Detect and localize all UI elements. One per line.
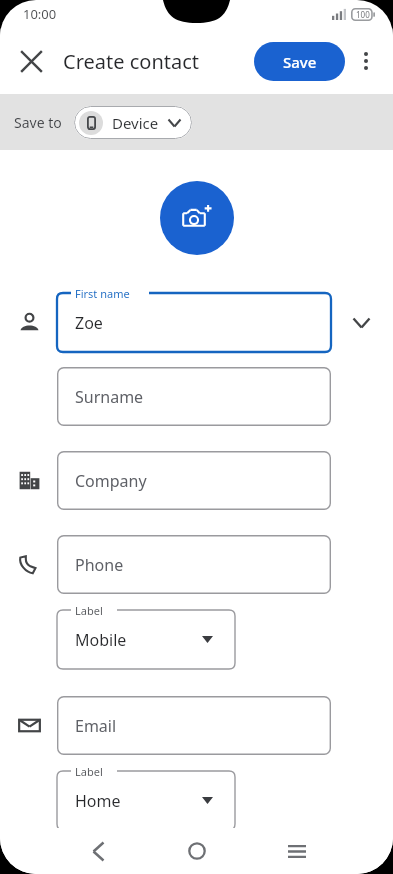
- button[interactable]: Add photo: [160, 181, 234, 255]
- button[interactable]: Company: [57, 451, 331, 510]
- button[interactable]: Expand name fields: [341, 303, 381, 343]
- button[interactable]: Label: [57, 610, 235, 669]
- staticText: Save: [283, 52, 317, 72]
- staticText: 10:00: [23, 5, 57, 23]
- staticText: Label: [75, 764, 103, 779]
- staticText: More fields: [62, 854, 143, 874]
- staticText: Mobile: [75, 629, 127, 651]
- button[interactable]: Back: [78, 831, 118, 871]
- staticText: 100: [356, 9, 370, 20]
- button[interactable]: Recent apps: [277, 831, 317, 871]
- button[interactable]: Email: [57, 696, 331, 755]
- staticText: Save to: [14, 113, 62, 132]
- staticText: Zoe: [75, 312, 103, 334]
- staticText: Create contact: [63, 48, 200, 75]
- staticText: Device: [112, 113, 159, 133]
- button[interactable]: Home: [177, 831, 217, 871]
- staticText: Phone: [75, 554, 124, 576]
- button[interactable]: Device: [74, 106, 192, 139]
- staticText: Surname: [75, 386, 144, 408]
- button[interactable]: Save: [254, 42, 345, 81]
- staticText: First name: [75, 286, 130, 301]
- staticText: Email: [75, 715, 117, 737]
- button[interactable]: Close: [11, 41, 51, 81]
- button[interactable]: More options: [346, 41, 386, 81]
- button[interactable]: First name: [57, 293, 331, 352]
- staticText: Home: [75, 790, 121, 812]
- button[interactable]: Label: [57, 771, 235, 830]
- button[interactable]: Phone: [57, 535, 331, 594]
- staticText: Label: [75, 603, 103, 618]
- staticText: Company: [75, 470, 147, 492]
- button[interactable]: Surname: [57, 367, 331, 426]
